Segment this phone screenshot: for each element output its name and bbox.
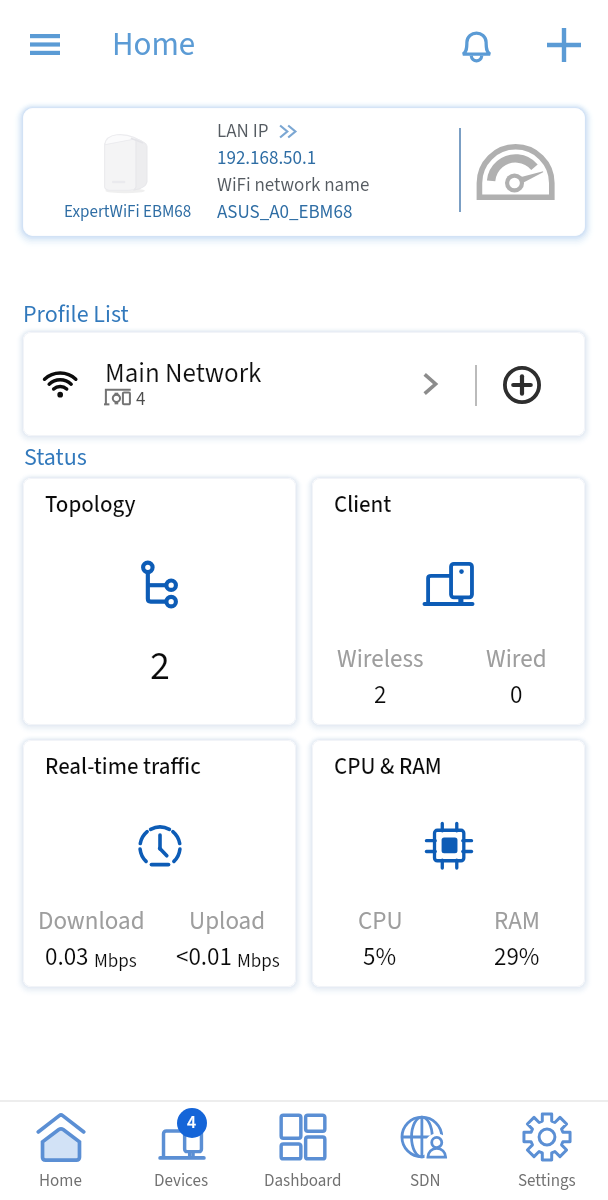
staticText: 2 [374,677,387,713]
button[interactable]: Notifications [448,16,505,73]
staticText: 4 [136,386,146,413]
button[interactable]: Topology [23,478,296,725]
staticText: Client [334,488,392,521]
button[interactable]: Add [535,16,592,73]
button[interactable]: Main Network [23,332,585,436]
staticText: LAN IP [217,118,269,145]
staticText: Download [38,903,145,939]
staticText: Home [39,1169,82,1193]
staticText: Main Network [105,354,262,392]
staticText: CPU [358,903,403,939]
staticText: RAM [494,903,540,939]
staticText: Wireless [337,641,424,677]
staticText: CPU & RAM [334,750,442,783]
staticText: 0.03 [45,939,89,975]
button[interactable]: Home [0,1102,121,1200]
button[interactable]: ExpertWiFi EBM68 [23,108,585,236]
button[interactable]: 4 [121,1102,242,1200]
staticText: Devices [154,1169,209,1193]
staticText: Profile List [23,297,129,331]
staticText: 4 [187,1110,197,1136]
staticText: Wired [486,641,547,677]
button[interactable]: SDN [364,1102,486,1200]
staticText: Upload [189,903,266,939]
button[interactable]: Real-time traffic [23,740,296,987]
staticText: <0.01 [176,939,232,975]
staticText: Home [112,21,196,68]
staticText: Real-time traffic [45,750,201,783]
staticText: Status [24,440,87,474]
button[interactable]: Dashboard [242,1102,364,1200]
button[interactable]: Settings [486,1102,608,1200]
staticText: SDN [410,1169,441,1193]
staticText: ExpertWiFi EBM68 [64,200,192,224]
button[interactable]: Menu [16,16,73,73]
staticText: 29% [494,939,540,975]
staticText: Dashboard [264,1169,342,1193]
button[interactable]: Add profile [496,359,548,411]
staticText: Mbps [237,948,280,975]
staticText: 5% [363,939,397,975]
staticText: 192.168.50.1 [217,145,317,172]
staticText: ASUS_A0_EBM68 [217,199,353,226]
staticText: Settings [518,1169,576,1193]
staticText: Topology [45,488,136,521]
staticText: 2 [150,638,170,695]
staticText: Mbps [94,948,137,975]
staticText: 0 [510,677,523,713]
staticText: WiFi network name [217,172,370,199]
button[interactable]: Client [312,478,585,725]
button[interactable]: CPU & RAM [312,740,585,987]
